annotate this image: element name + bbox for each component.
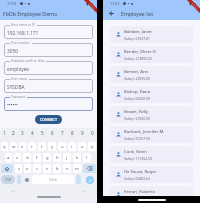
button[interactable]: c bbox=[33, 164, 41, 173]
button[interactable]: CONNECT bbox=[35, 115, 62, 124]
button[interactable]: 3 bbox=[18, 129, 27, 136]
staticText: Salary: 212850.00 bbox=[124, 56, 152, 61]
button[interactable]: Back bbox=[106, 8, 116, 18]
staticText: c bbox=[36, 166, 39, 172]
button[interactable]: e bbox=[19, 142, 26, 151]
staticText: Port number bbox=[11, 41, 31, 45]
button[interactable]: De Souza, Roger bbox=[110, 166, 193, 183]
staticText: , bbox=[19, 177, 20, 182]
staticText: Bishop, Dana bbox=[124, 89, 151, 95]
staticText: Salary: 27000.00 bbox=[124, 116, 150, 121]
button[interactable]: d bbox=[23, 153, 31, 162]
button[interactable]: w bbox=[10, 142, 17, 151]
button[interactable]: g bbox=[43, 153, 51, 162]
staticText: Salary: 69482.63 bbox=[124, 176, 150, 181]
staticText: Employee list bbox=[121, 10, 154, 17]
button[interactable]: . bbox=[76, 175, 81, 184]
button[interactable]: v bbox=[43, 164, 51, 173]
staticText: Polski bbox=[49, 178, 57, 182]
staticText: Database path or alias bbox=[11, 59, 45, 63]
button[interactable]: 1 bbox=[0, 129, 9, 136]
button[interactable]: Bennet, Ann bbox=[110, 66, 193, 83]
staticText: 192.168.1.171 bbox=[7, 30, 39, 37]
staticText: h bbox=[56, 155, 59, 161]
button[interactable]: Polski bbox=[32, 175, 74, 184]
button[interactable]: ?123 bbox=[1, 175, 15, 184]
button[interactable]: 5 bbox=[37, 129, 47, 136]
staticText: Salary: 10000.00 bbox=[124, 196, 150, 201]
staticText: b bbox=[56, 166, 59, 172]
button[interactable]: l bbox=[83, 153, 91, 162]
button[interactable]: x bbox=[24, 164, 31, 173]
staticText: Salary: 53167.50 bbox=[124, 136, 150, 141]
button[interactable]: j bbox=[63, 153, 71, 162]
staticText: j bbox=[66, 155, 68, 161]
button[interactable]: h bbox=[53, 153, 61, 162]
staticText: Host name or IP bbox=[11, 23, 36, 27]
staticText: 1 bbox=[3, 130, 6, 136]
button[interactable]: z bbox=[15, 164, 22, 173]
staticText: f bbox=[36, 155, 38, 161]
button[interactable]: p bbox=[88, 142, 96, 151]
button[interactable]: •••••• bbox=[4, 97, 93, 111]
button[interactable]: t bbox=[38, 142, 46, 151]
button[interactable]: Enter bbox=[86, 176, 94, 184]
button[interactable]: Emoji bbox=[22, 175, 31, 184]
button[interactable]: SYSDBA bbox=[4, 79, 93, 93]
button[interactable]: Ferrari, Roberto bbox=[110, 186, 193, 203]
button[interactable]: 8 bbox=[67, 129, 77, 136]
button[interactable]: Shift bbox=[1, 164, 13, 173]
staticText: i bbox=[71, 144, 73, 150]
staticText: e bbox=[21, 144, 24, 150]
button[interactable]: Bishop, Dana bbox=[110, 86, 193, 103]
staticText: 5 bbox=[41, 130, 44, 136]
button[interactable]: y bbox=[48, 142, 56, 151]
button[interactable]: b bbox=[53, 164, 61, 173]
staticText: v bbox=[46, 166, 49, 172]
button[interactable]: a bbox=[5, 153, 12, 162]
button[interactable]: Burbank, Jennifer M. bbox=[110, 126, 193, 143]
staticText: Brown, Kelly bbox=[124, 109, 149, 115]
button[interactable]: k bbox=[73, 153, 81, 162]
staticText: x bbox=[26, 166, 29, 172]
staticText: t bbox=[41, 144, 43, 150]
button[interactable]: employee bbox=[4, 61, 93, 75]
staticText: Burbank, Jennifer M. bbox=[124, 129, 165, 135]
button[interactable]: o bbox=[78, 142, 86, 151]
button[interactable]: n bbox=[63, 164, 71, 173]
staticText: s bbox=[16, 155, 19, 161]
button[interactable]: s bbox=[14, 153, 21, 162]
button[interactable]: 0 bbox=[87, 129, 97, 136]
button[interactable]: 192.168.1.171 bbox=[4, 25, 93, 39]
staticText: r bbox=[31, 144, 33, 150]
button[interactable]: 6 bbox=[47, 129, 57, 136]
staticText: Bennet, Ann bbox=[124, 69, 149, 75]
staticText: l bbox=[86, 155, 88, 161]
button[interactable]: , bbox=[17, 175, 21, 184]
button[interactable]: 2 bbox=[9, 129, 18, 136]
button[interactable]: Cook, Kevin bbox=[110, 146, 193, 163]
staticText: a bbox=[7, 155, 10, 161]
staticText: q bbox=[3, 144, 6, 150]
button[interactable]: Baldwin, Janet bbox=[110, 26, 193, 43]
staticText: 7 bbox=[61, 130, 64, 136]
button[interactable]: q bbox=[1, 142, 8, 151]
button[interactable]: i bbox=[68, 142, 76, 151]
button[interactable]: m bbox=[73, 164, 81, 173]
staticText: u bbox=[61, 144, 64, 150]
staticText: n bbox=[66, 166, 69, 172]
button[interactable]: Bender, Oliver H. bbox=[110, 46, 193, 63]
button[interactable]: 9 bbox=[77, 129, 87, 136]
button[interactable]: 7 bbox=[57, 129, 67, 136]
button[interactable]: 3050 bbox=[4, 43, 93, 57]
staticText: User name bbox=[11, 77, 28, 81]
staticText: z bbox=[18, 166, 20, 172]
staticText: Salary: 111262.50 bbox=[124, 156, 152, 161]
staticText: p bbox=[91, 144, 94, 150]
button[interactable]: u bbox=[58, 142, 66, 151]
button[interactable]: r bbox=[28, 142, 36, 151]
button[interactable]: Backspace bbox=[83, 164, 96, 173]
button[interactable]: f bbox=[33, 153, 41, 162]
button[interactable]: Brown, Kelly bbox=[110, 106, 193, 123]
button[interactable]: 4 bbox=[27, 129, 37, 136]
